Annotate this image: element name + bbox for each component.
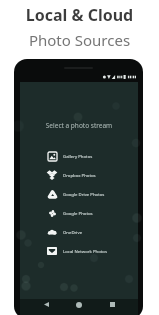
- staticText: OneDrive: [63, 229, 83, 235]
- staticText: Google Photos: [63, 210, 93, 216]
- button[interactable]: Dropbox Photos: [20, 165, 138, 184]
- button[interactable]: Back: [38, 299, 54, 315]
- button[interactable]: Recents: [104, 299, 120, 315]
- staticText: Local & Cloud: [0, 4, 159, 26]
- staticText: Local Network Photos: [63, 248, 108, 254]
- button[interactable]: OneDrive: [20, 222, 138, 241]
- button[interactable]: Home: [71, 299, 87, 315]
- button[interactable]: Google Photos: [20, 203, 138, 222]
- staticText: Photo Sources: [0, 30, 159, 50]
- staticText: Select a photo stream: [20, 121, 138, 130]
- staticText: Google Drive Photos: [63, 191, 105, 197]
- button[interactable]: Local Network Photos: [20, 241, 138, 260]
- staticText: Dropbox Photos: [63, 172, 96, 178]
- button[interactable]: Gallery Photos: [20, 146, 138, 165]
- button[interactable]: Google Drive Photos: [20, 184, 138, 203]
- staticText: Gallery Photos: [63, 153, 93, 159]
